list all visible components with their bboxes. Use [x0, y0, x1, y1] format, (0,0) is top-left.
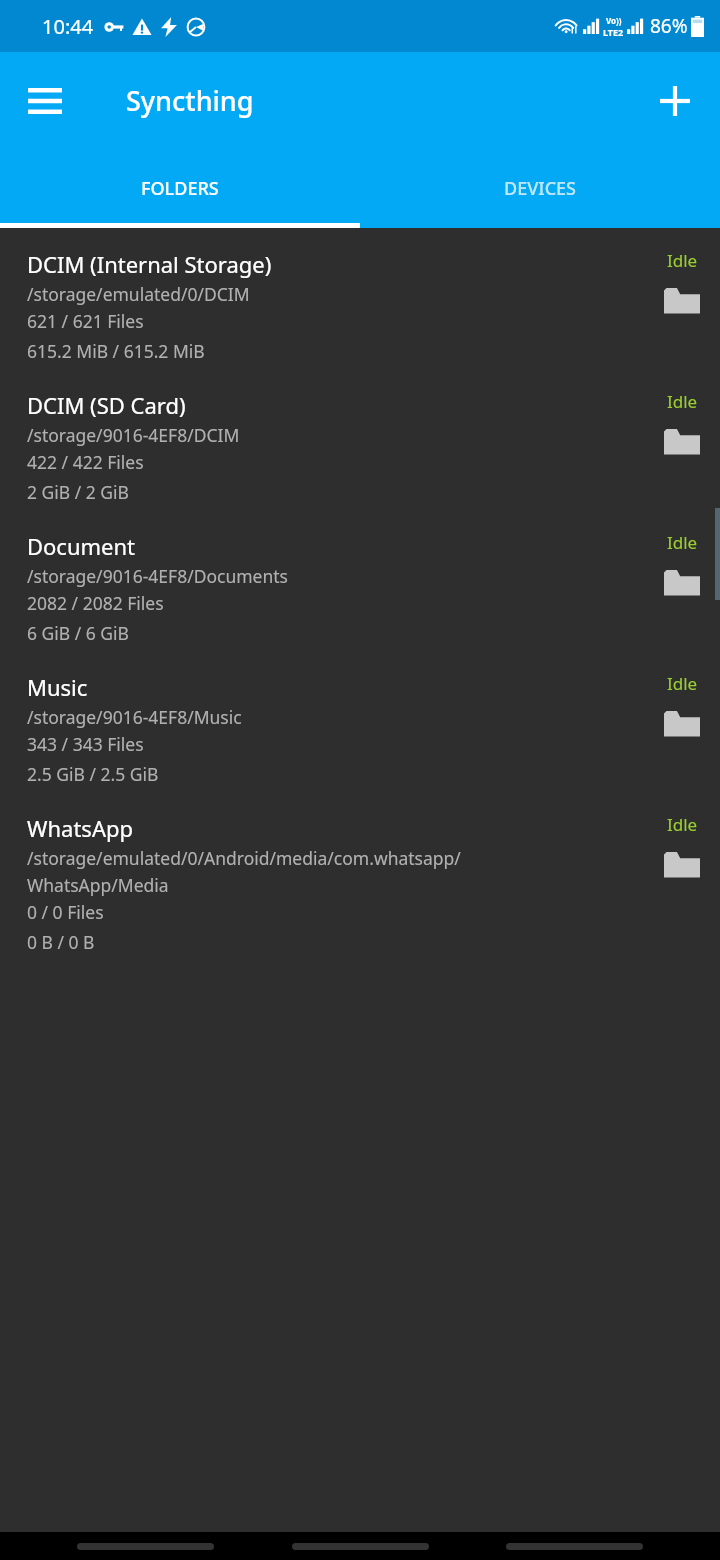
button[interactable]: Music: [0, 667, 720, 808]
staticText: DEVICES: [504, 176, 576, 201]
staticText: WhatsApp/Media: [27, 873, 169, 897]
button[interactable]: System navigation: [77, 1543, 214, 1550]
staticText: Idle: [667, 813, 698, 836]
button[interactable]: DEVICES: [360, 149, 720, 228]
staticText: /storage/9016-4EF8/DCIM: [27, 423, 240, 447]
staticText: 0 B / 0 B: [27, 930, 95, 954]
staticText: 10:44: [42, 13, 94, 40]
staticText: DCIM (SD Card): [27, 390, 186, 420]
staticText: 615.2 MiB / 615.2 MiB: [27, 339, 205, 363]
button[interactable]: Add folder: [644, 70, 706, 132]
button[interactable]: DCIM (Internal Storage): [0, 244, 720, 385]
staticText: FOLDERS: [141, 176, 219, 201]
button[interactable]: Open navigation menu: [14, 70, 76, 132]
staticText: 0 / 0 Files: [27, 900, 104, 924]
staticText: DCIM (Internal Storage): [27, 249, 272, 279]
staticText: /storage/emulated/0/DCIM: [27, 282, 250, 306]
staticText: Idle: [667, 390, 698, 413]
staticText: /storage/9016-4EF8/Music: [27, 705, 242, 729]
button[interactable]: FOLDERS: [0, 149, 360, 228]
staticText: Syncthing: [126, 82, 254, 119]
button[interactable]: Document: [0, 526, 720, 667]
staticText: 343 / 343 Files: [27, 732, 144, 756]
staticText: Idle: [667, 531, 698, 554]
staticText: 2.5 GiB / 2.5 GiB: [27, 762, 159, 786]
staticText: LTE2: [603, 26, 624, 38]
staticText: Idle: [667, 249, 698, 272]
staticText: Document: [27, 531, 136, 561]
staticText: 2 GiB / 2 GiB: [27, 480, 129, 504]
button[interactable]: DCIM (SD Card): [0, 385, 720, 526]
button[interactable]: WhatsApp: [0, 808, 720, 976]
staticText: 86%: [650, 13, 688, 39]
button[interactable]: System navigation: [506, 1543, 643, 1550]
staticText: /storage/emulated/0/Android/media/com.wh…: [27, 846, 461, 870]
staticText: 621 / 621 Files: [27, 309, 144, 333]
staticText: /storage/9016-4EF8/Documents: [27, 564, 288, 588]
staticText: Vo)): [606, 15, 622, 26]
staticText: Music: [27, 672, 88, 702]
staticText: 6 GiB / 6 GiB: [27, 621, 129, 645]
button[interactable]: System navigation: [292, 1543, 429, 1550]
staticText: 2082 / 2082 Files: [27, 591, 164, 615]
staticText: WhatsApp: [27, 813, 133, 843]
staticText: 422 / 422 Files: [27, 450, 144, 474]
staticText: Idle: [667, 672, 698, 695]
